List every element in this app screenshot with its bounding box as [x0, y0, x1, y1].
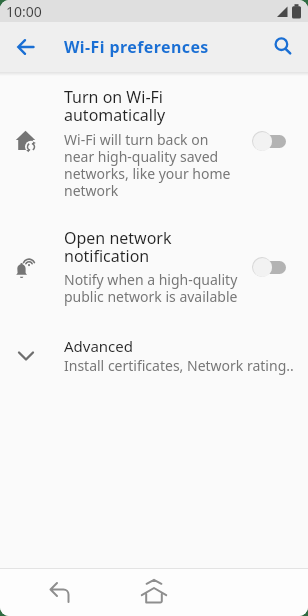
button[interactable]: Turn on Wi-Fi automatically: [0, 86, 308, 200]
staticText: Turn on Wi-Fi automatically: [64, 86, 166, 126]
button[interactable]: [44, 577, 76, 609]
button[interactable]: [138, 577, 170, 609]
button[interactable]: Advanced: [0, 336, 308, 375]
staticText: Install certificates, Network rating..: [64, 356, 294, 375]
staticText: Notify when a high-quality public networ…: [64, 270, 238, 306]
button[interactable]: [267, 31, 299, 63]
button[interactable]: [252, 257, 286, 277]
button[interactable]: [10, 31, 42, 63]
staticText: 10:00: [6, 2, 42, 21]
staticText: Wi-Fi will turn back on near high-qualit…: [64, 130, 231, 200]
staticText: Wi-Fi preferences: [64, 36, 209, 58]
staticText: Open network notification: [64, 227, 172, 267]
button[interactable]: [252, 131, 286, 151]
staticText: Advanced: [64, 336, 134, 356]
button[interactable]: Open network notification: [0, 227, 308, 306]
